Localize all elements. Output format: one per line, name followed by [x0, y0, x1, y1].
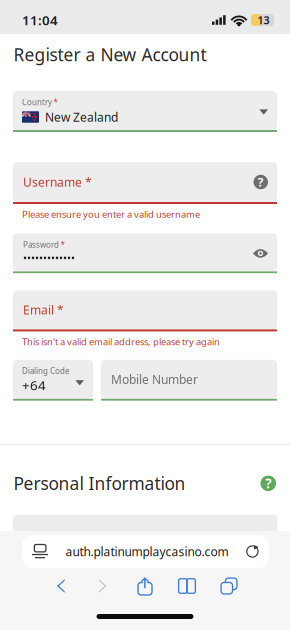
staticText: •••••••••••••: [23, 251, 75, 265]
staticText: ?: [258, 174, 264, 190]
staticText: Username *: [23, 174, 92, 190]
button[interactable]: Share: [124, 577, 166, 595]
staticText: Personal Information: [13, 472, 185, 495]
staticText: This isn't a valid email address, please…: [22, 335, 220, 348]
button[interactable]: Back: [40, 577, 82, 595]
staticText: Mobile Number: [111, 371, 198, 387]
staticText: Password: [23, 239, 59, 250]
button[interactable]: Bookmarks: [166, 577, 208, 595]
staticText: Please ensure you enter a valid username: [22, 208, 200, 220]
staticText: 11:04: [22, 11, 58, 29]
staticText: ?: [265, 474, 271, 492]
button[interactable]: Page settings: [22, 535, 52, 568]
button[interactable]: Username *: [13, 162, 277, 204]
staticText: *: [53, 97, 57, 107]
button[interactable]: Forward: [82, 577, 124, 595]
staticText: Email *: [23, 302, 64, 318]
staticText: 13: [257, 13, 269, 27]
staticText: auth.platinumplaycasino.com: [65, 543, 228, 559]
button[interactable]: Tabs: [208, 577, 250, 595]
button[interactable]: Help: [260, 476, 276, 491]
staticText: +64: [22, 376, 46, 394]
staticText: Dialing Code: [22, 366, 70, 376]
button[interactable]: Dialing Code: [13, 360, 93, 401]
button[interactable]: Mobile Number: [101, 360, 277, 401]
button[interactable]: Password: [13, 233, 277, 273]
staticText: Register a New Account: [13, 43, 206, 66]
button[interactable]: Reload: [242, 535, 269, 568]
staticText: New Zealand: [45, 109, 118, 125]
button[interactable]: Country: [13, 91, 277, 132]
staticText: Country: [22, 97, 52, 107]
button[interactable]: Email *: [13, 290, 277, 331]
staticText: *: [60, 239, 64, 250]
